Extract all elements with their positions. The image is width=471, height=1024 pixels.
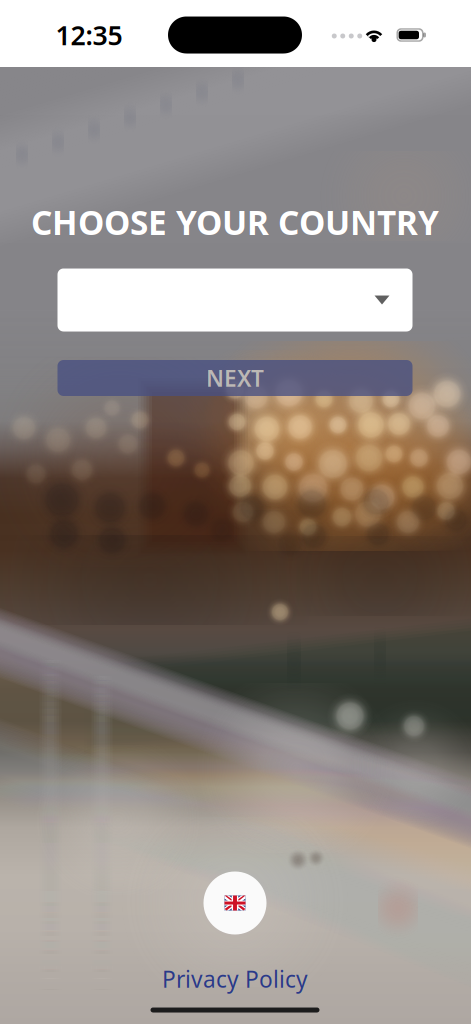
button[interactable]: NEXT bbox=[57, 360, 412, 396]
staticText: Privacy Policy bbox=[162, 964, 308, 994]
staticText: CHOOSE YOUR COUNTRY bbox=[31, 200, 439, 244]
button[interactable]: Privacy Policy bbox=[162, 964, 308, 994]
button[interactable]: Choose your country bbox=[57, 268, 412, 331]
staticText: NEXT bbox=[206, 363, 264, 393]
staticText: 12:35 bbox=[55, 17, 122, 53]
button[interactable]: Change language, currently English bbox=[203, 871, 266, 934]
